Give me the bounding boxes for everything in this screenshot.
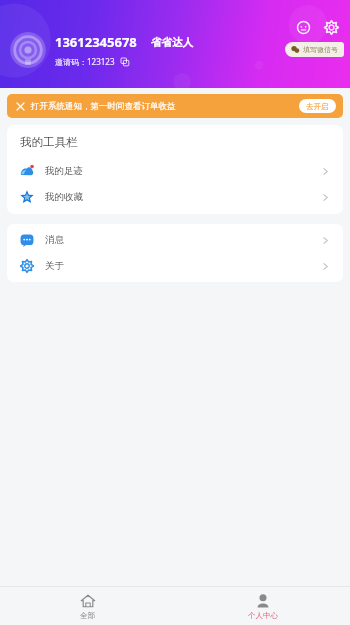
button[interactable]: 全部: [0, 589, 175, 624]
button[interactable]: 我的足迹: [7, 158, 343, 184]
button[interactable]: Copy invite code: [119, 56, 130, 67]
button[interactable]: 去开启: [299, 99, 336, 113]
staticText: 关于: [45, 260, 321, 272]
button[interactable]: 填写微信号: [285, 42, 344, 57]
staticText: 我的收藏: [45, 191, 321, 203]
staticText: 去开启: [306, 102, 329, 111]
staticText: 我的工具栏: [20, 135, 78, 149]
staticText: 13612345678: [55, 33, 137, 51]
button[interactable]: 我的收藏: [7, 184, 343, 210]
button[interactable]: 消息: [7, 227, 343, 253]
button[interactable]: Settings: [320, 16, 342, 38]
button[interactable]: 个人中心: [175, 589, 350, 624]
button[interactable]: Close: [14, 100, 26, 112]
staticText: 个人中心: [248, 611, 278, 620]
staticText: 我的足迹: [45, 165, 321, 177]
staticText: 打开系统通知，第一时间查看订单收益: [31, 101, 299, 112]
button[interactable]: 关于: [7, 253, 343, 279]
staticText: 省省达人: [151, 36, 193, 49]
staticText: 消息: [45, 234, 321, 246]
button[interactable]: Customer service: [292, 16, 314, 38]
staticText: 填写微信号: [303, 45, 338, 54]
button[interactable]: Avatar: [10, 32, 46, 68]
staticText: 邀请码：123123: [55, 56, 115, 67]
staticText: 全部: [80, 611, 95, 620]
